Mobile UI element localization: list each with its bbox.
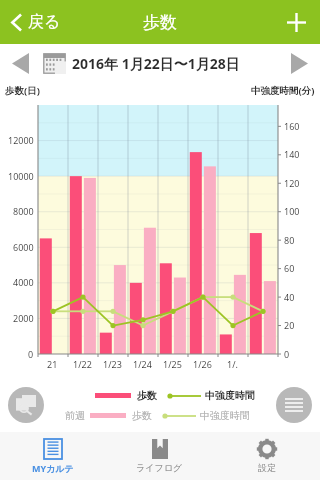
button[interactable]: Compare (8, 387, 44, 423)
button[interactable]: Previous week (6, 47, 35, 80)
staticText: 1/. (227, 358, 238, 370)
staticText: 2000 (13, 312, 34, 324)
button[interactable]: 設定 (213, 432, 320, 480)
staticText: 戻る (28, 12, 61, 32)
staticText: 1/26 (193, 358, 212, 370)
staticText: 60 (284, 262, 295, 274)
staticText: 中強度時間(分) (251, 84, 315, 97)
staticText: 歩数 (137, 389, 157, 402)
staticText: 歩数(日) (5, 84, 40, 97)
staticText: 120 (284, 177, 300, 189)
button[interactable]: Add (273, 0, 320, 44)
button[interactable]: MYカルテ (0, 432, 106, 480)
button[interactable]: ライフログ (106, 432, 213, 480)
staticText: 1/24 (133, 358, 152, 370)
staticText: 10000 (8, 170, 34, 182)
button[interactable]: Next week (285, 47, 314, 80)
button[interactable]: 戻る (0, 0, 75, 44)
button[interactable]: Menu (276, 387, 312, 423)
staticText: ライフログ (136, 462, 183, 473)
staticText: 中強度時間 (205, 389, 255, 402)
staticText: 21 (47, 358, 58, 370)
staticText: 80 (284, 234, 295, 246)
staticText: 中強度時間 (200, 409, 250, 422)
staticText: 1/23 (103, 358, 122, 370)
staticText: 1/25 (163, 358, 182, 370)
staticText: 4000 (13, 276, 34, 288)
staticText: 100 (284, 205, 300, 217)
staticText: 前週 (65, 409, 85, 422)
staticText: 6000 (13, 241, 34, 253)
staticText: 1/22 (73, 358, 92, 370)
staticText: 12000 (8, 134, 34, 146)
staticText: 設定 (258, 462, 276, 473)
staticText: 0 (284, 348, 290, 360)
staticText: 8000 (13, 205, 34, 217)
staticText: 160 (284, 120, 300, 132)
staticText: 140 (284, 148, 300, 160)
staticText: 20 (284, 319, 295, 331)
staticText: MYカルテ (32, 462, 74, 474)
staticText: 40 (284, 291, 295, 303)
staticText: 歩数 (143, 12, 177, 33)
staticText: 2016年 1月22日〜1月28日 (72, 54, 240, 73)
staticText: 0 (28, 348, 34, 360)
staticText: 歩数 (132, 409, 152, 422)
